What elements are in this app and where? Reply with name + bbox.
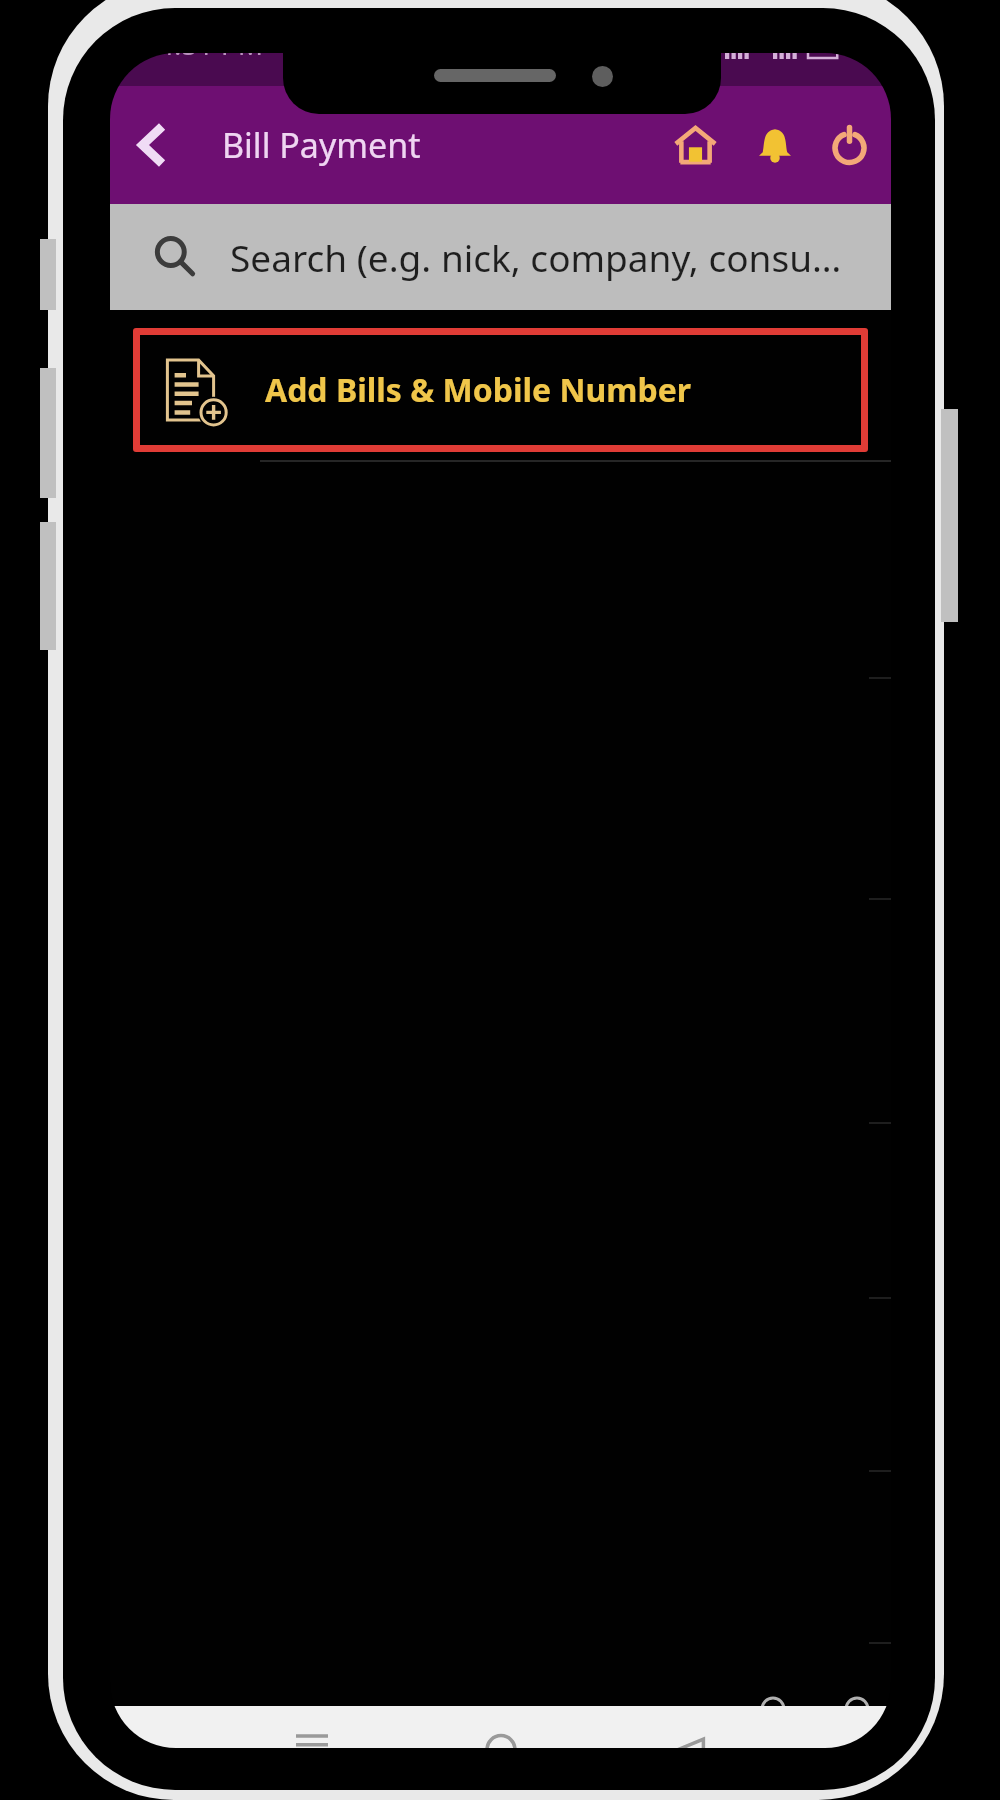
button[interactable]: Logout xyxy=(811,95,888,195)
button[interactable]: Recents xyxy=(292,1708,332,1748)
button[interactable]: Back xyxy=(110,100,194,190)
button[interactable]: Home xyxy=(653,95,738,195)
button[interactable]: Back xyxy=(669,1708,709,1748)
staticText: Add Bills & Mobile Number xyxy=(265,368,692,412)
button[interactable]: Notifications xyxy=(738,95,811,195)
staticText: Search (e.g. nick, company, consu… xyxy=(230,232,842,282)
button[interactable]: Add Bills & Mobile Number xyxy=(133,328,868,452)
button[interactable]: Search (e.g. nick, company, consu… xyxy=(110,204,891,310)
staticText: 4:51 PM xyxy=(158,53,264,58)
button[interactable]: Home xyxy=(481,1708,521,1748)
staticText: Bill Payment xyxy=(222,122,421,168)
